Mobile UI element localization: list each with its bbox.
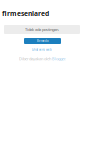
staticText: Blogger. <box>52 56 66 61</box>
button[interactable]: Beranda <box>24 38 61 44</box>
staticText: Lihat versi web <box>32 48 52 51</box>
staticText: Diberdayakan oleh <box>19 56 51 61</box>
staticText: Beranda <box>37 39 48 43</box>
button[interactable]: Blogger. <box>52 56 66 61</box>
button[interactable]: Lihat versi web <box>32 48 52 51</box>
staticText: Tidak ada postingan. <box>25 27 59 32</box>
staticText: firmesenlared <box>2 9 49 18</box>
